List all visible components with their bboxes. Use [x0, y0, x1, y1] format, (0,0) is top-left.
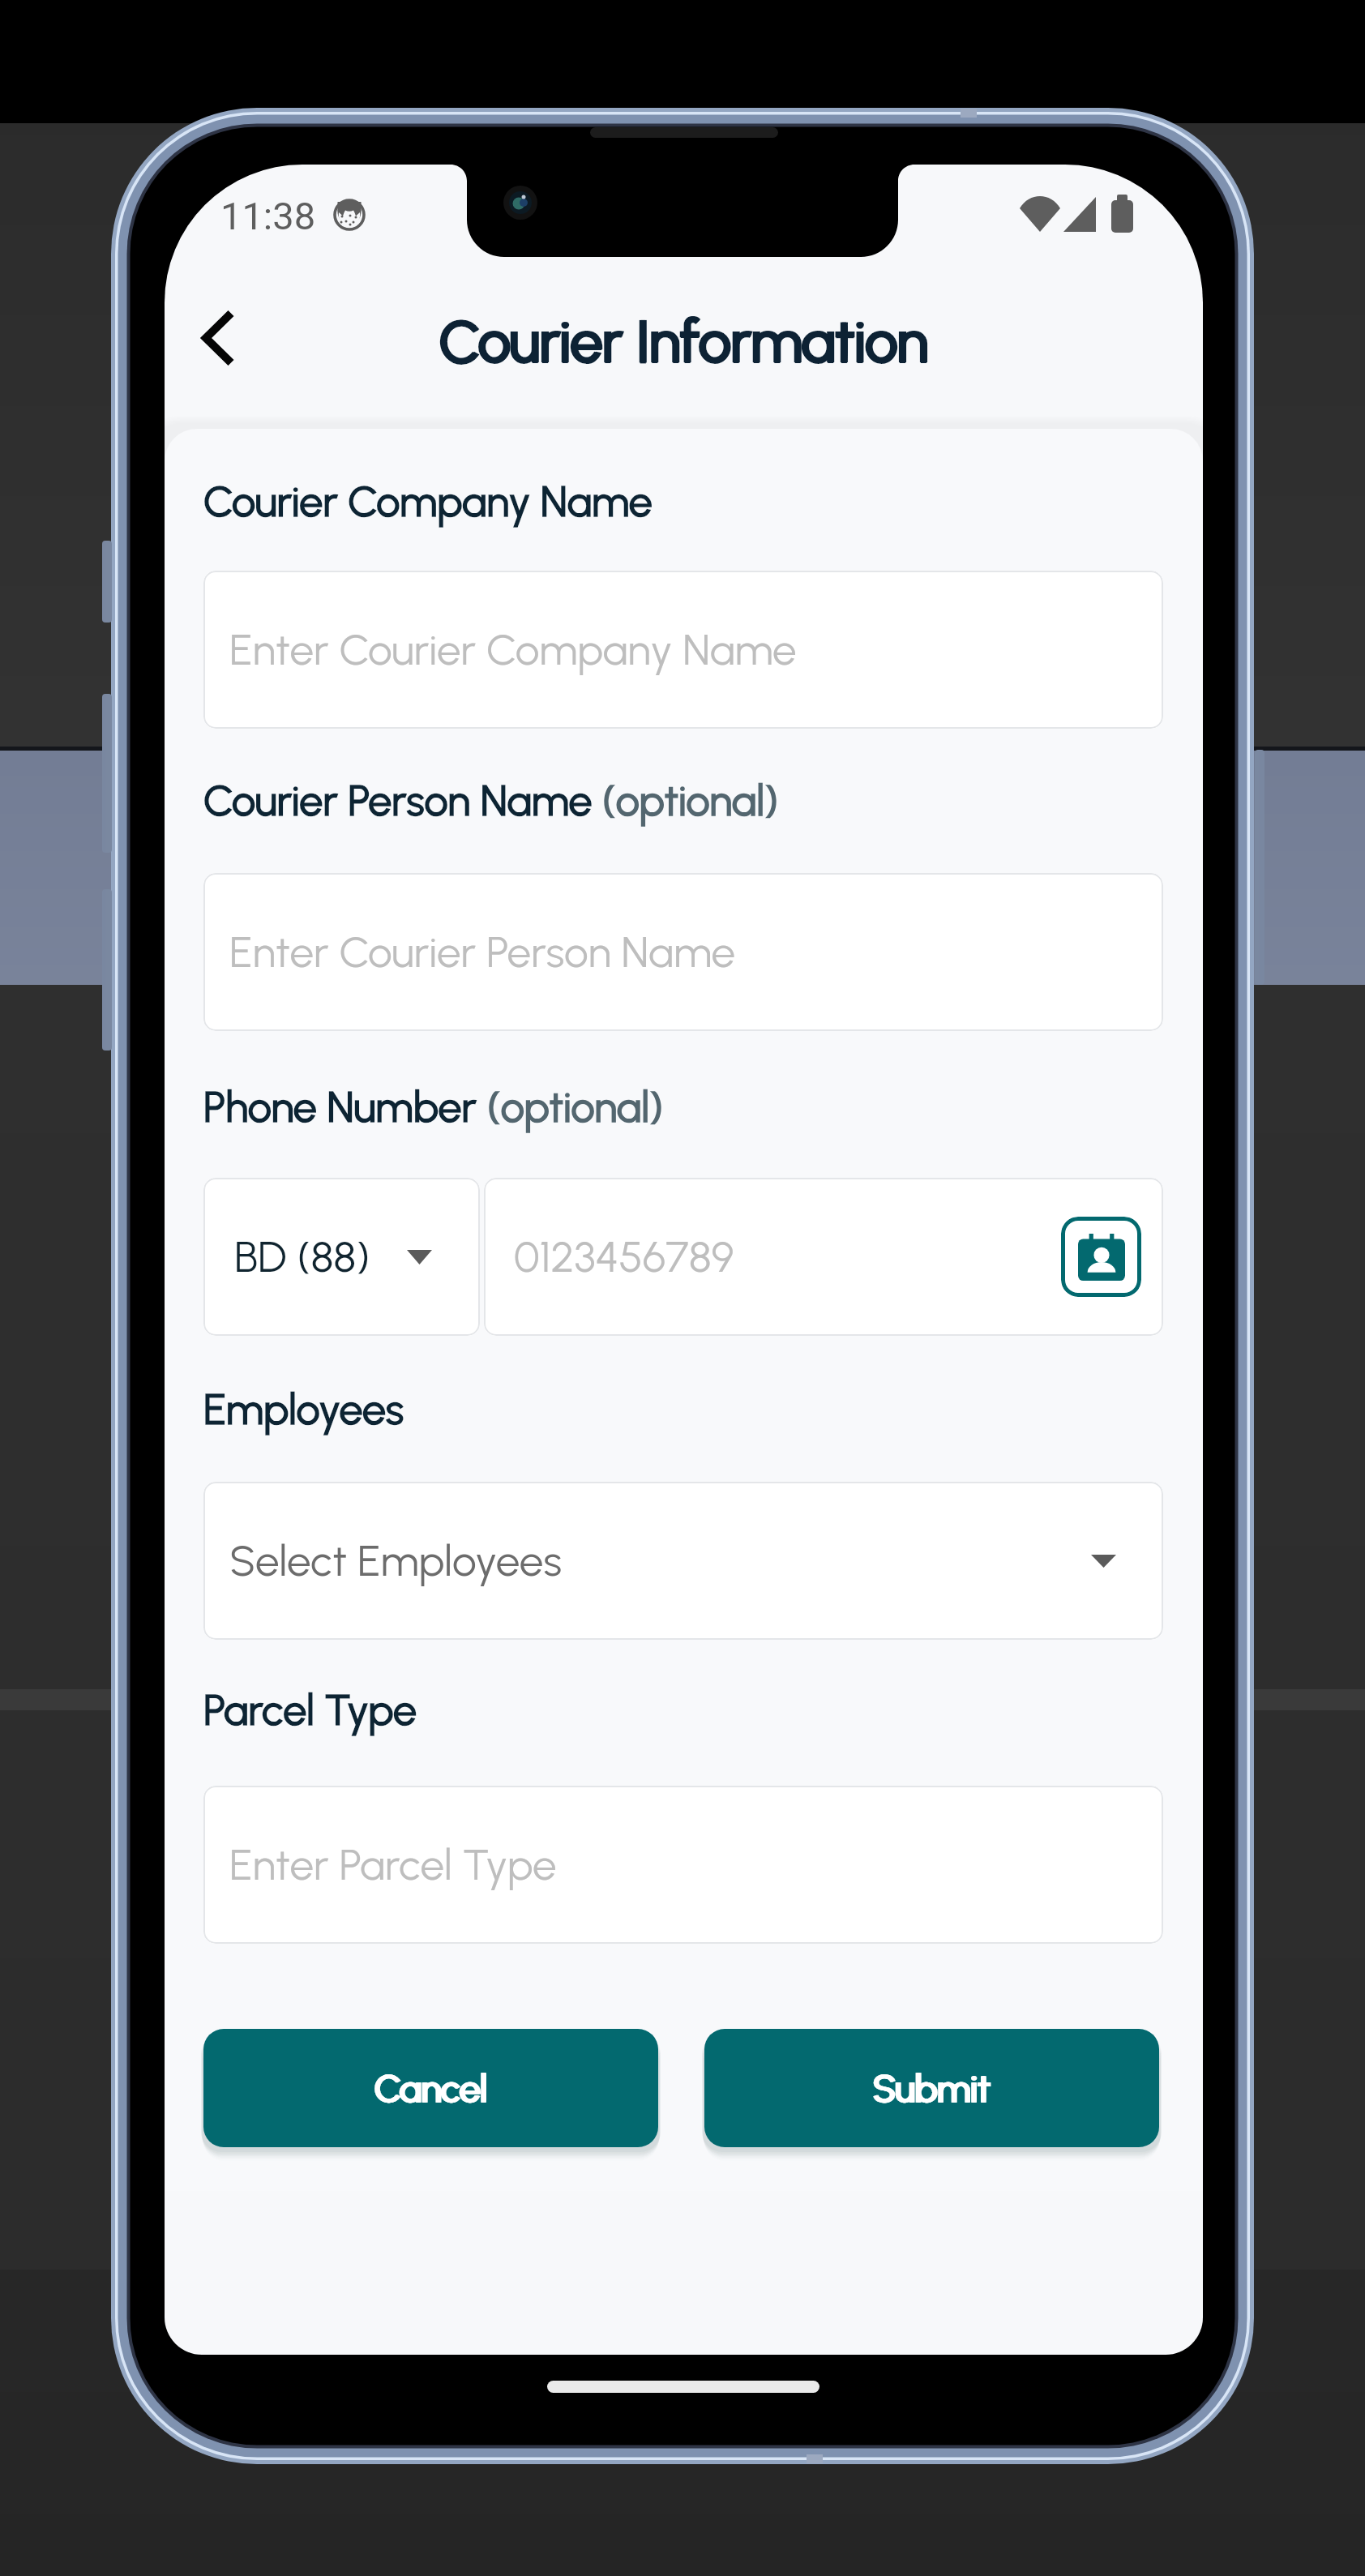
staticText: Employees — [203, 1384, 404, 1435]
staticText: Select Employees — [229, 1535, 563, 1587]
staticText: BD (88) — [234, 1231, 370, 1283]
button[interactable]: Enter Courier Person Name — [203, 873, 1163, 1031]
button[interactable]: Select Employees — [203, 1482, 1163, 1640]
staticText: Courier Person Name — [203, 776, 602, 826]
staticText: Cancel — [374, 2066, 487, 2111]
button[interactable]: 0123456789 — [484, 1178, 1163, 1336]
staticText: Submit — [874, 2066, 991, 2111]
button[interactable]: Back — [180, 302, 253, 374]
staticText: Enter Parcel Type — [229, 1839, 557, 1891]
staticText: Courier Information — [165, 308, 1203, 377]
staticText: Enter Courier Company Name — [229, 624, 797, 676]
staticText: Enter Courier Person Name — [229, 926, 736, 978]
staticText: (optional) — [602, 776, 778, 826]
staticText: Courier Information — [165, 307, 1202, 376]
staticText: Courier Information — [165, 307, 1203, 376]
staticText: Parcel Type — [203, 1685, 417, 1735]
staticText: Cancel — [375, 2066, 489, 2111]
staticText: 11:38 — [220, 194, 316, 238]
button[interactable]: BD (88) — [203, 1178, 480, 1336]
button[interactable]: Submit — [704, 2029, 1159, 2147]
button[interactable]: Pick from contacts — [1061, 1217, 1141, 1297]
staticText: Cancel — [374, 2066, 488, 2111]
button[interactable]: Enter Courier Company Name — [203, 571, 1163, 729]
staticText: 0123456789 — [514, 1231, 734, 1283]
staticText: Phone Number — [203, 1082, 487, 1132]
staticText: Submit — [873, 2066, 991, 2111]
staticText: Courier Company Name — [203, 477, 653, 527]
button[interactable]: Cancel — [203, 2029, 658, 2147]
staticText: (optional) — [487, 1082, 663, 1132]
button[interactable]: Enter Parcel Type — [203, 1786, 1163, 1944]
staticText: Submit — [872, 2066, 990, 2111]
